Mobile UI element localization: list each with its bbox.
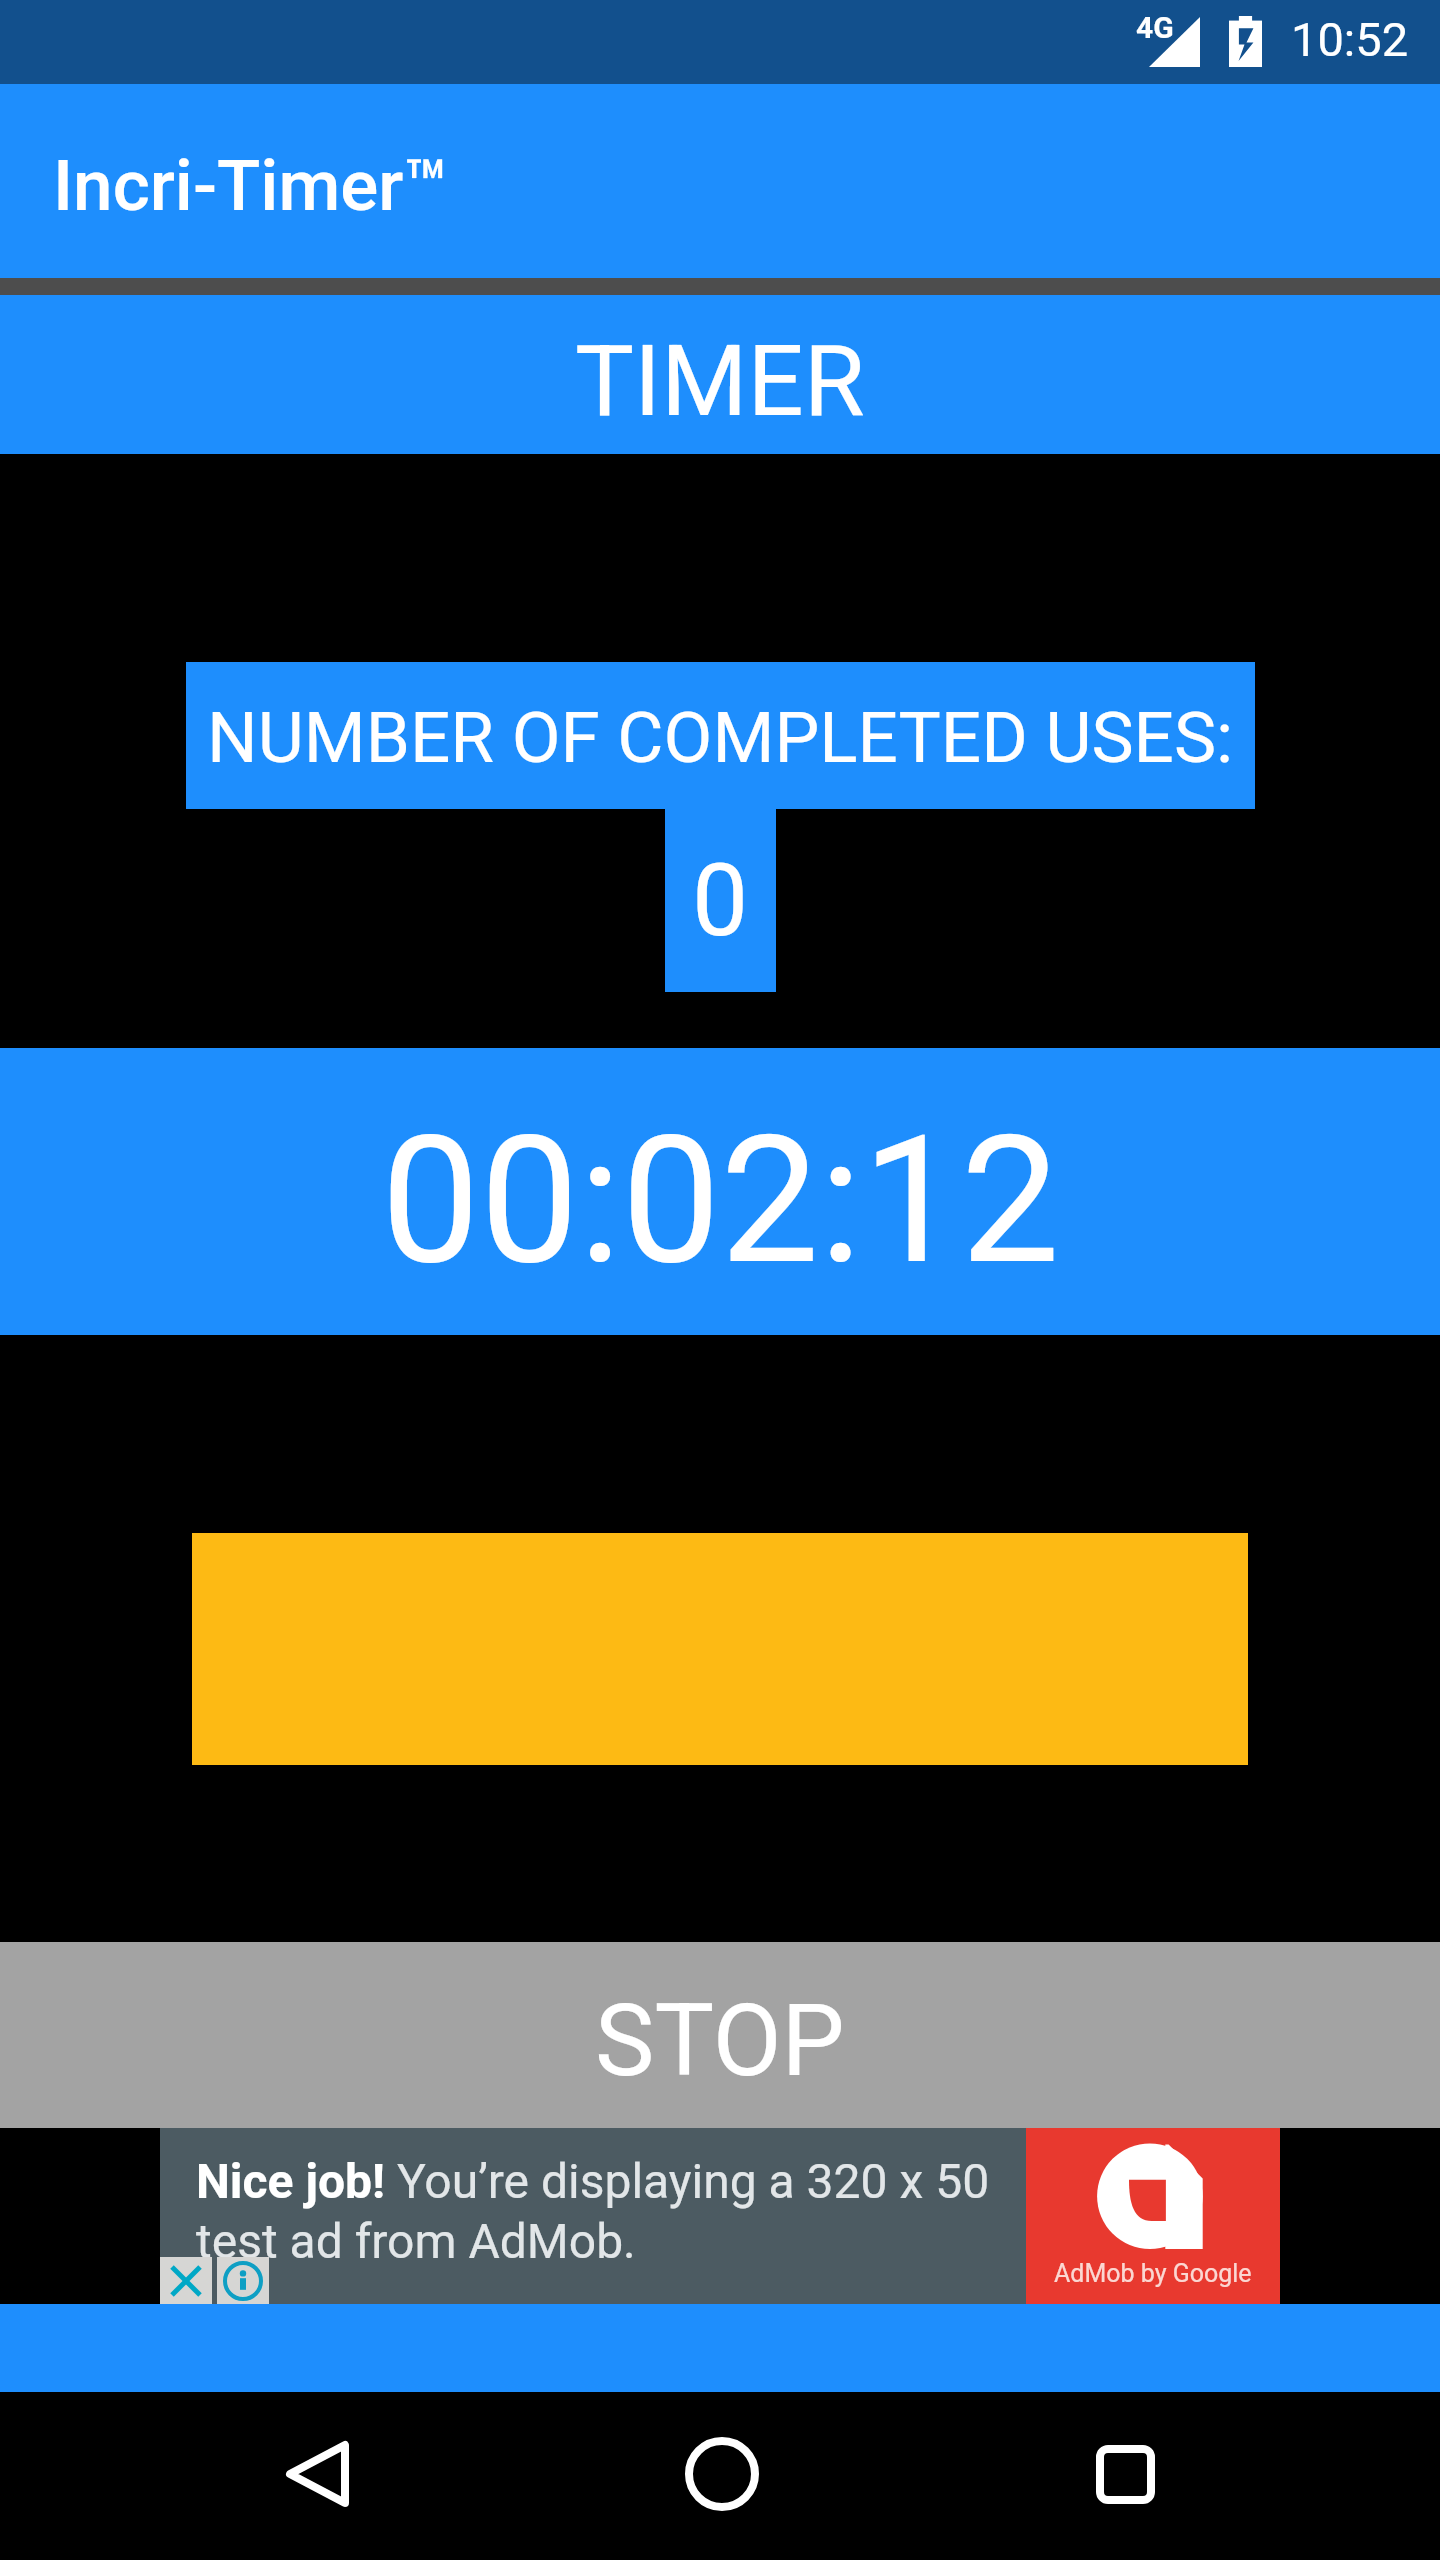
button[interactable]: Back	[237, 2394, 397, 2554]
staticText: AdMob by Google	[1054, 2259, 1252, 2288]
staticText: 00:02:12	[381, 1098, 1060, 1304]
staticText: Nice job!	[196, 2153, 397, 2209]
button[interactable]: TIMER	[0, 295, 1440, 454]
staticText: test ad from AdMob.	[196, 2213, 636, 2269]
button[interactable]: Recent apps	[1045, 2394, 1205, 2554]
staticText: STOP	[595, 1982, 845, 2099]
button[interactable]: Nice job!	[160, 2128, 1280, 2304]
button[interactable]: Ad information	[217, 2257, 269, 2304]
button[interactable]: Close ad	[160, 2257, 212, 2304]
staticText: NUMBER OF COMPLETED USES:	[207, 696, 1234, 779]
staticText: TIMER	[575, 323, 865, 439]
button[interactable]: Home	[642, 2394, 802, 2554]
staticText: 0	[692, 842, 749, 959]
button[interactable]: STOP	[0, 1942, 1440, 2128]
staticText: Incri-Timer™	[53, 144, 449, 227]
staticText: 4G	[1136, 10, 1174, 45]
staticText: 10:52	[1291, 12, 1409, 67]
staticText: You’re displaying a 320 x 50	[397, 2153, 990, 2209]
